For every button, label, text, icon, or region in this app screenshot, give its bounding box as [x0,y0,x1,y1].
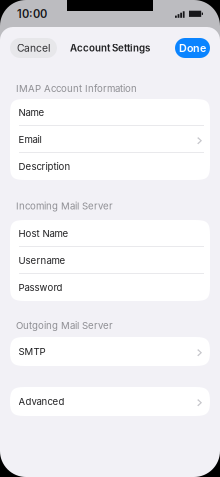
button[interactable]: Cancel [10,38,57,58]
staticText: Advanced [18,396,64,407]
button[interactable]: Email [10,126,210,153]
button[interactable]: SMTP [10,337,210,366]
staticText: Password [18,282,62,293]
button[interactable]: Advanced [10,387,210,416]
staticText: Outgoing Mail Server [16,320,113,331]
button[interactable]: Password [10,274,210,301]
staticText: Account Settings [70,42,150,54]
staticText: Username [18,255,65,266]
staticText: Name [18,107,44,118]
staticText: Description [18,161,70,172]
staticText: Email [18,134,41,145]
staticText: Cancel [17,42,50,54]
staticText: SMTP [18,346,45,357]
staticText: 10:00 [17,7,47,21]
button[interactable]: Name [10,99,210,126]
button[interactable]: Description [10,153,210,180]
button[interactable]: Username [10,247,210,274]
button[interactable]: Done [175,38,210,58]
staticText: Host Name [18,228,68,239]
button[interactable]: Host Name [10,220,210,247]
staticText: Done [179,41,206,54]
staticText: IMAP Account Information [16,83,137,94]
staticText: Incoming Mail Server [16,200,113,212]
